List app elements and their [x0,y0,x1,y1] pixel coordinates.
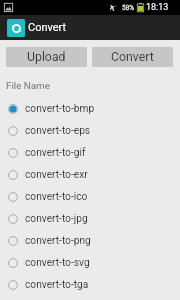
staticText: Convert [111,50,154,64]
staticText: convert-to-eps [25,125,91,137]
button[interactable]: convert-to-ico [0,186,180,208]
other: Convert app icon [7,19,25,37]
button[interactable]: convert-to-eps [0,120,180,142]
button[interactable]: convert-to-gif [0,142,180,164]
button[interactable]: convert-to-tga [0,274,180,296]
staticText: convert-to-jpg [25,213,88,225]
staticText: convert-to-tga [25,279,89,291]
button[interactable]: convert-to-svg [0,252,180,274]
staticText: convert-to-png [25,235,91,247]
button[interactable]: convert-to-bmp [0,98,180,120]
staticText: File Name [6,80,50,91]
staticText: convert-to-bmp [25,103,95,115]
button[interactable]: convert-to-exr [0,164,180,186]
button[interactable]: convert-to-png [0,230,180,252]
staticText: 58% [122,4,135,12]
button[interactable]: Convert app icon [0,0,180,40]
staticText: Convert [28,21,67,34]
button[interactable]: Convert [92,47,173,67]
button[interactable]: convert-to-jpg [0,208,180,230]
staticText: convert-to-svg [25,257,90,269]
staticText: convert-to-exr [25,169,88,181]
staticText: 18:13 [146,2,169,13]
staticText: convert-to-ico [25,191,88,203]
staticText: Upload [27,50,66,64]
button[interactable]: Upload [6,47,87,67]
staticText: convert-to-gif [25,147,86,159]
